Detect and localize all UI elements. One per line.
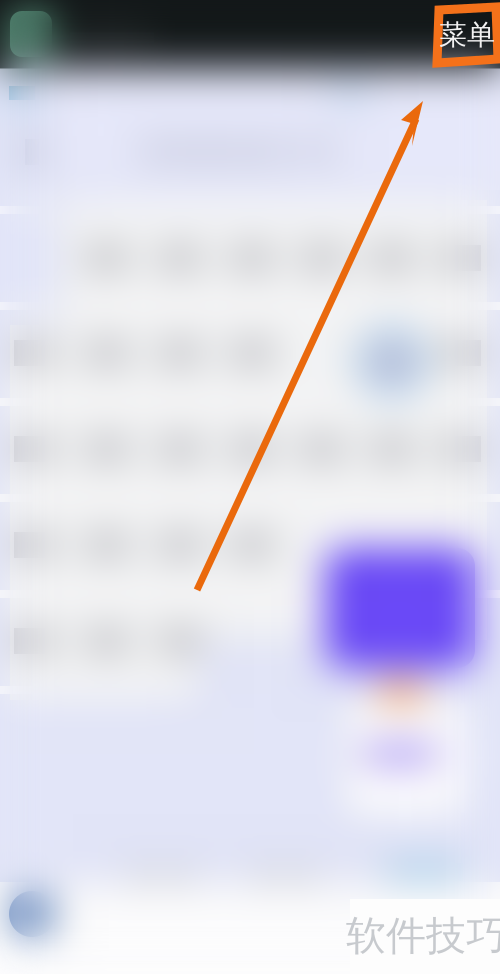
staticText: 菜单 [439, 18, 495, 52]
button[interactable]: 菜单 [0, 0, 500, 974]
staticText: 软件技巧 [346, 911, 500, 960]
